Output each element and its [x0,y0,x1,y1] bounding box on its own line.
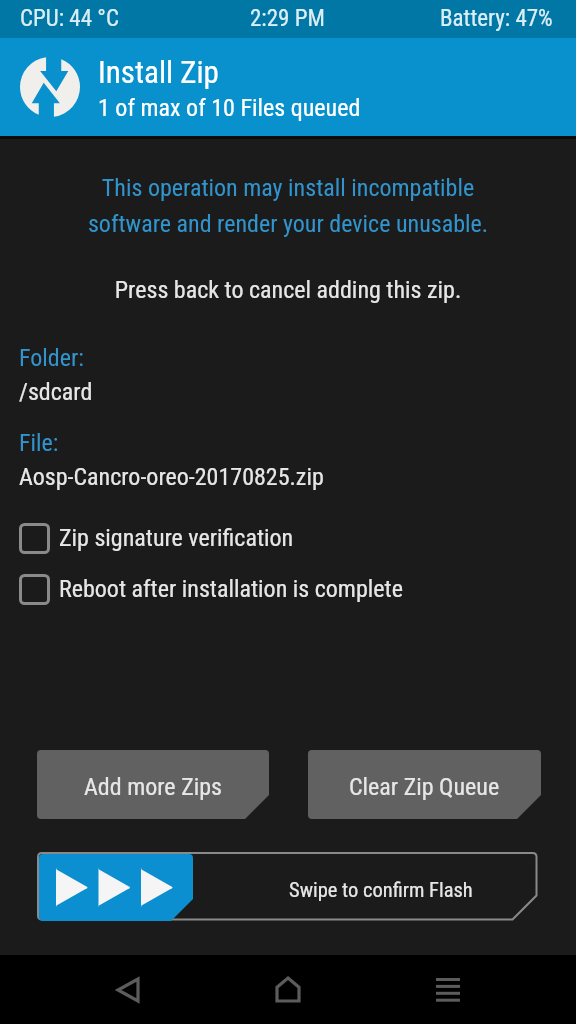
staticText: Add more Zips [84,773,222,801]
staticText: This operation may install incompatible … [0,174,576,238]
button[interactable]: Back [93,955,163,1024]
staticText: Install Zip [98,54,219,90]
button[interactable]: Menu [413,955,483,1024]
staticText: Press back to cancel adding this zip. [0,276,576,304]
staticText: Folder: [19,344,84,372]
staticText: File: [19,429,59,457]
button[interactable]: Add more Zips [37,750,269,819]
staticText: 1 of max of 10 Files queued [98,94,361,122]
staticText: CPU: 44 °C [20,5,119,32]
staticText: Battery: 47% [440,5,553,32]
staticText: Reboot after installation is complete [59,575,403,603]
staticText: Clear Zip Queue [349,773,500,801]
staticText: Zip signature verification [59,524,294,552]
staticText: /sdcard [19,378,93,406]
staticText: Aosp-Cancro-oreo-20170825.zip [19,463,324,491]
button[interactable]: Home [253,955,323,1024]
button[interactable]: Reboot after installation is complete [12,569,403,609]
staticText: 2:29 PM [250,5,325,32]
staticText: Swipe to confirm Flash [289,878,473,902]
button[interactable]: Zip signature verification [12,518,294,558]
button[interactable]: Swipe to confirm Flash [38,853,538,921]
button[interactable]: Clear Zip Queue [308,750,541,819]
